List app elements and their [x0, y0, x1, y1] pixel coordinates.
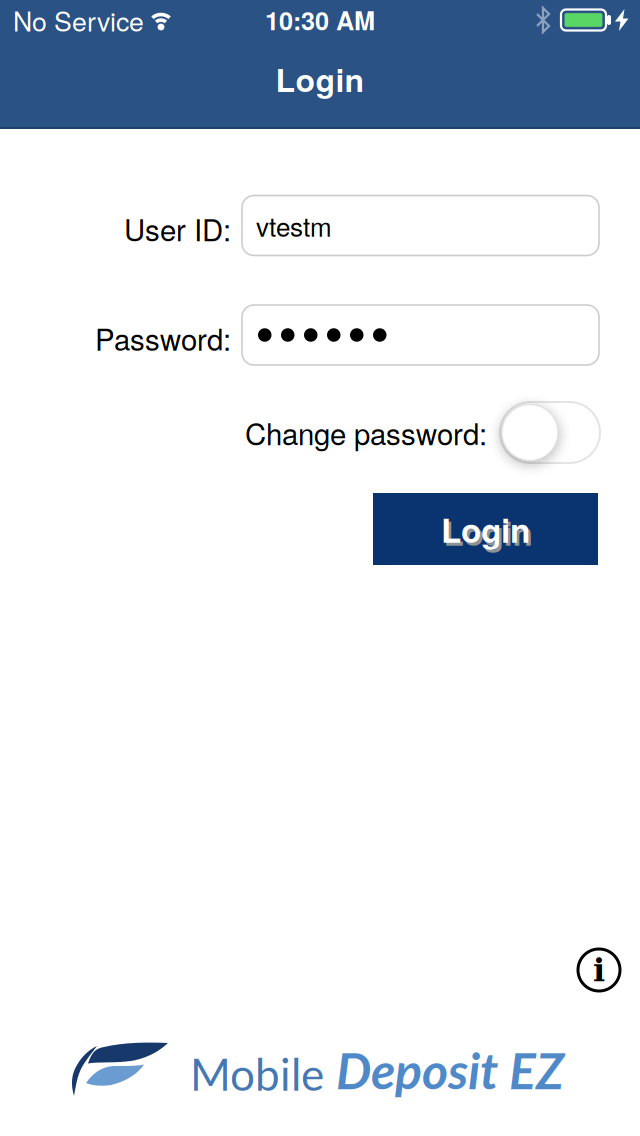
staticText: Login: [443, 508, 532, 556]
button[interactable]: Login: [373, 493, 598, 565]
button[interactable]: Password: [242, 305, 599, 365]
staticText: 10:30 AM: [265, 2, 375, 38]
staticText: i: [593, 951, 605, 989]
staticText: Login: [275, 56, 364, 102]
staticText: Change password:: [245, 411, 487, 453]
staticText: Deposit EZ: [336, 1040, 564, 1100]
staticText: Login: [441, 505, 530, 553]
staticText: Mobile: [190, 1047, 324, 1100]
staticText: No Service: [13, 1, 144, 39]
staticText: User ID:: [124, 207, 231, 249]
button[interactable]: User ID: [242, 195, 599, 255]
button[interactable]: Change password: [500, 402, 600, 463]
staticText: vtestm: [256, 207, 332, 244]
staticText: Password:: [95, 317, 231, 359]
button[interactable]: Info: [575, 946, 623, 994]
